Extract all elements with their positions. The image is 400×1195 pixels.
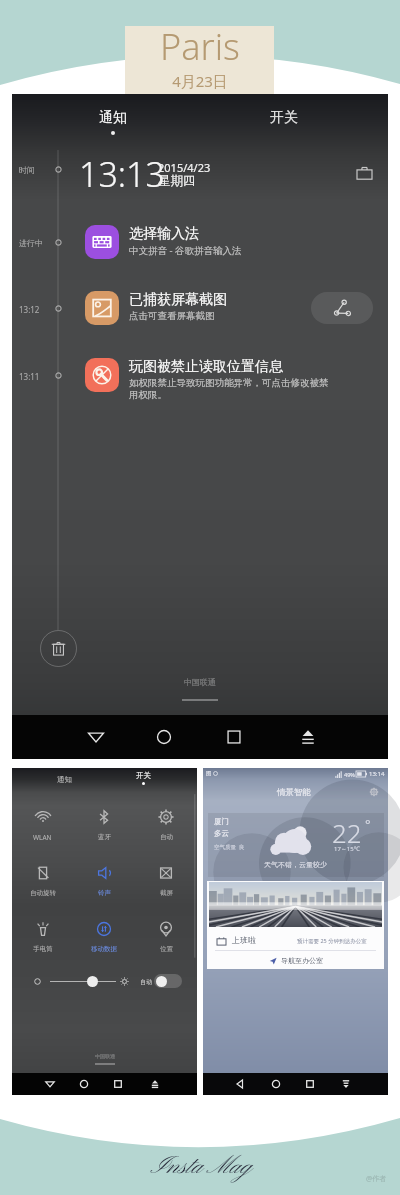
staticText: 导航至办公室 <box>281 956 323 965</box>
button[interactable]: 手电筒 <box>12 916 73 962</box>
staticText: 星期四 <box>158 173 196 189</box>
staticText: 移动数据 <box>91 945 117 953</box>
staticText: 4月23日 <box>172 71 228 91</box>
staticText: 时间 <box>19 165 35 175</box>
button[interactable]: 通知 <box>84 106 142 138</box>
staticText: 空气质量 良 <box>214 843 245 851</box>
staticText: 蓝牙 <box>98 833 111 841</box>
staticText: 已捕获屏幕截图 <box>129 291 227 309</box>
button[interactable]: 截屏 <box>135 860 197 906</box>
button[interactable]: 通知 <box>44 771 84 787</box>
staticText: 预计需要 25 分钟到达办公室 <box>297 937 367 945</box>
button[interactable]: Home <box>73 1073 95 1095</box>
staticText: 天气不错，云量较少 <box>264 860 327 869</box>
button[interactable]: 移动数据 <box>73 916 135 962</box>
button[interactable]: Recents <box>212 715 256 759</box>
staticText: Paris <box>160 22 240 71</box>
button[interactable]: WLAN <box>12 804 73 850</box>
button[interactable]: 开关 <box>123 771 163 791</box>
staticText: 22 <box>332 815 362 850</box>
button[interactable]: Share <box>311 292 373 324</box>
staticText: 通知 <box>99 109 127 127</box>
button[interactable]: Recents <box>107 1073 129 1095</box>
button[interactable]: 上班啦 <box>207 881 384 969</box>
button[interactable]: 13:11 <box>12 358 388 424</box>
staticText: 截屏 <box>160 889 173 897</box>
staticText: 多云 <box>214 829 229 838</box>
staticText: 自动 <box>140 978 152 986</box>
staticText: 如权限禁止导致玩图功能异常，可点击修改被禁 <box>129 377 329 389</box>
staticText: 玩图被禁止读取位置信息 <box>129 358 283 376</box>
button[interactable]: Settings <box>366 784 382 800</box>
staticText: 13:11 <box>19 371 40 382</box>
staticText: 自动 <box>160 833 173 841</box>
staticText: 位置 <box>160 945 173 953</box>
staticText: 上班啦 <box>232 935 256 945</box>
staticText: 49% <box>344 771 355 778</box>
staticText: 中国联通 <box>184 677 216 687</box>
button[interactable]: Home <box>265 1073 287 1095</box>
staticText: 中文拼音 - 谷歌拼音输入法 <box>129 244 242 257</box>
button[interactable]: Menu <box>286 715 330 759</box>
staticText: 点击可查看屏幕截图 <box>129 310 215 322</box>
staticText: 通知 <box>57 775 72 784</box>
button[interactable]: Menu <box>144 1073 166 1095</box>
button[interactable]: 铃声 <box>73 860 135 906</box>
staticText: ° <box>365 815 371 833</box>
staticText: 13:12 <box>19 304 40 315</box>
button[interactable]: Paris <box>125 26 274 95</box>
staticText: 情景智能 <box>277 787 311 798</box>
staticText: 选择输入法 <box>129 225 199 243</box>
button[interactable]: Auto brightness <box>154 974 182 988</box>
button[interactable]: Recents <box>299 1073 321 1095</box>
button[interactable]: 导航至办公室 <box>207 952 384 969</box>
staticText: @作者 <box>366 1174 387 1184</box>
button[interactable]: 蓝牙 <box>73 804 135 850</box>
button[interactable]: Settings <box>352 161 376 185</box>
staticText: 17～15℃ <box>334 845 360 853</box>
staticText: 自动旋转 <box>30 889 56 897</box>
staticText: 13:14 <box>369 770 385 778</box>
button[interactable]: 位置 <box>135 916 197 962</box>
staticText: 2015/4/23 <box>158 160 211 175</box>
staticText: Insta Mag <box>150 1151 251 1182</box>
staticText: 图 <box>206 770 212 777</box>
button[interactable]: Brightness <box>87 976 98 987</box>
button[interactable]: Back <box>39 1073 61 1095</box>
staticText: 手电筒 <box>33 945 53 953</box>
staticText: WLAN <box>33 833 52 842</box>
button[interactable]: Back <box>229 1073 251 1095</box>
staticText: 13:13 <box>79 151 165 197</box>
button[interactable]: Back <box>74 715 118 759</box>
button[interactable]: Menu <box>335 1073 357 1095</box>
staticText: 进行中 <box>19 238 43 248</box>
button[interactable]: 自动旋转 <box>12 860 73 906</box>
button[interactable]: Clear all notifications <box>40 630 77 667</box>
staticText: 开关 <box>136 771 151 780</box>
button[interactable]: 开关 <box>255 106 313 136</box>
button[interactable]: 13:12 <box>12 291 388 351</box>
button[interactable]: 进行中 <box>12 225 388 285</box>
staticText: 厦门 <box>214 817 229 826</box>
staticText: 用权限。 <box>129 389 167 401</box>
staticText: 铃声 <box>98 889 111 897</box>
staticText: 中国联通 <box>95 1053 115 1059</box>
button[interactable]: Home <box>142 715 186 759</box>
button[interactable]: 自动 <box>135 804 197 850</box>
staticText: 开关 <box>270 109 298 127</box>
